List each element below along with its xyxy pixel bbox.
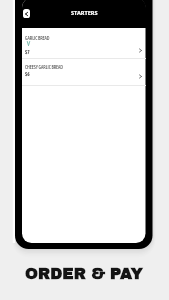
button[interactable]: Back [23,9,30,18]
staticText: ORDER & PAY [25,265,143,282]
staticText: $6 [25,71,30,77]
staticText: GARLIC BREAD [25,36,50,42]
staticText: CHEESY GARLIC BREAD [25,65,64,71]
button[interactable]: CHEESY GARLIC BREAD [22,59,146,85]
staticText: $7 [25,49,30,55]
staticText: STARTERS [71,9,98,17]
button[interactable]: GARLIC BREAD [22,28,146,58]
